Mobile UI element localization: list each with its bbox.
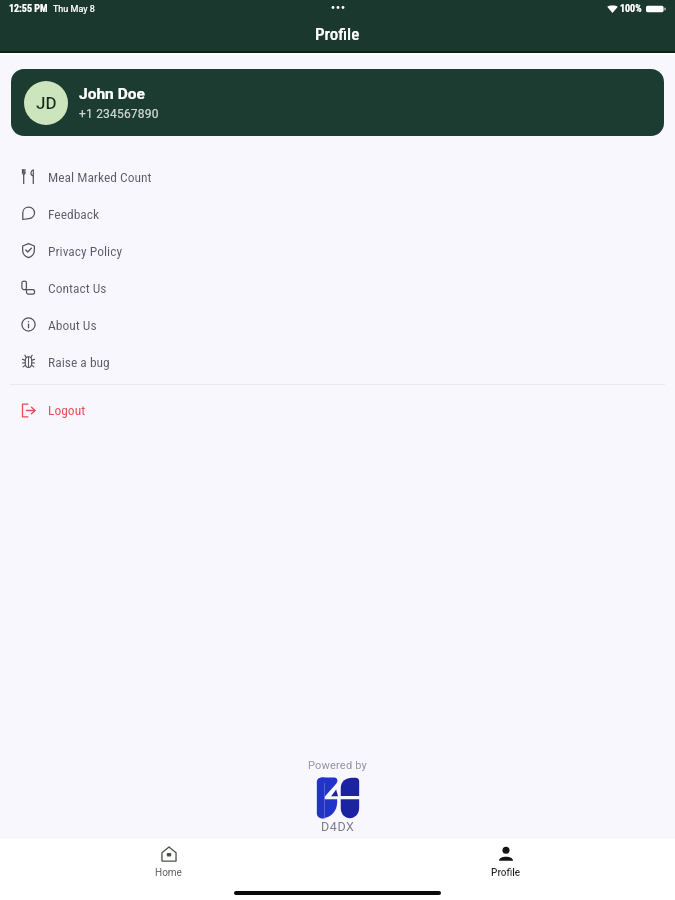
- button[interactable]: Feedback: [0, 195, 675, 232]
- button[interactable]: Contact Us: [0, 269, 675, 306]
- button[interactable]: Raise a bug: [0, 343, 675, 380]
- staticText: Raise a bug: [48, 354, 110, 370]
- staticText: About Us: [48, 317, 97, 333]
- button[interactable]: Meal Marked Count: [0, 158, 675, 195]
- staticText: Powered by: [308, 759, 367, 772]
- button[interactable]: Home: [0, 839, 337, 880]
- staticText: 12:55 PM: [9, 3, 48, 15]
- staticText: D4DX: [321, 819, 355, 834]
- staticText: JD: [36, 93, 57, 113]
- staticText: +1 234567890: [79, 107, 159, 121]
- staticText: 100%: [620, 3, 642, 15]
- staticText: Meal Marked Count: [48, 169, 152, 185]
- staticText: Profile: [315, 24, 360, 44]
- button[interactable]: About Us: [0, 306, 675, 343]
- staticText: Home: [155, 867, 182, 879]
- staticText: Thu May 8: [53, 4, 95, 15]
- staticText: Profile: [491, 867, 521, 879]
- button[interactable]: Profile: [337, 839, 675, 880]
- button[interactable]: Privacy Policy: [0, 232, 675, 269]
- staticText: Logout: [48, 402, 86, 418]
- button[interactable]: JD: [11, 69, 664, 136]
- button[interactable]: Logout: [0, 393, 675, 427]
- staticText: Privacy Policy: [48, 243, 123, 259]
- staticText: John Doe: [79, 85, 145, 103]
- staticText: Contact Us: [48, 280, 107, 296]
- staticText: Feedback: [48, 206, 100, 222]
